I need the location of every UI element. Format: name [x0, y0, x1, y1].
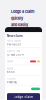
staticText: Pending — [7, 81, 17, 84]
staticText: Status — [7, 60, 13, 63]
staticText: Policy number — [7, 40, 21, 42]
staticText: Excess — [7, 67, 13, 70]
staticText: New claim — [7, 34, 23, 38]
staticText: Date of loss — [7, 50, 20, 53]
staticText: $500 — [7, 70, 15, 74]
button[interactable]: Lodge claim — [7, 93, 40, 100]
staticText: Lodge a claim — [11, 9, 34, 14]
staticText: PN-48201 — [7, 43, 21, 46]
staticText: 12 Mar 2024 — [7, 53, 24, 56]
staticText: and easily — [11, 22, 28, 27]
staticText: Assessor — [7, 77, 16, 80]
staticText: quickly — [11, 16, 23, 20]
staticText: Lodge claim — [13, 95, 33, 99]
